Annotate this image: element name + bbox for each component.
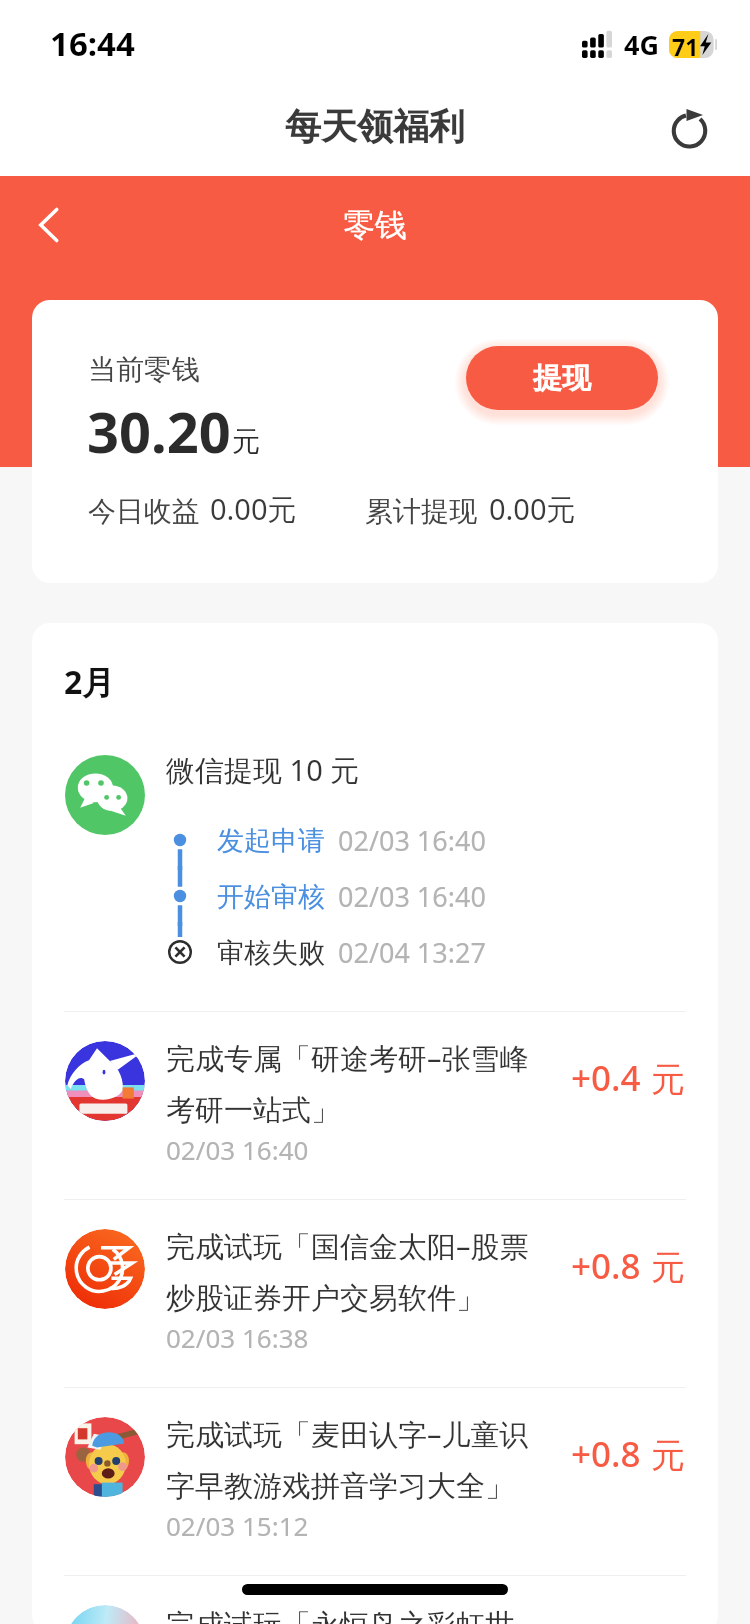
staticText: 当前零钱	[88, 352, 200, 387]
staticText: 字早教游戏拼音学习大全」	[166, 1468, 514, 1505]
staticText: 元	[651, 1434, 685, 1477]
staticText: 考研一站式」	[166, 1092, 340, 1129]
staticText: 今日收益	[88, 494, 200, 529]
button[interactable]: Refresh	[658, 99, 724, 165]
staticText: 审核失败	[217, 936, 325, 970]
staticText: 元	[651, 1246, 685, 1289]
staticText: 02/03 15:12	[166, 1508, 309, 1543]
staticText: 完成专属「研途考研–张雪峰	[166, 1038, 529, 1078]
staticText: 02/03 16:38	[166, 1320, 309, 1355]
button[interactable]: 提现	[466, 346, 658, 410]
staticText: 02/04 13:27	[338, 934, 486, 971]
staticText: 每天领福利	[285, 104, 465, 149]
staticText: 炒股证券开户交易软件」	[166, 1280, 485, 1317]
staticText: +0.4	[571, 1054, 641, 1102]
staticText: 71	[672, 31, 699, 58]
staticText: +0.8	[571, 1242, 641, 1290]
staticText: 完成试玩「国信金太阳–股票	[166, 1226, 529, 1266]
staticText: 0.00元	[489, 489, 576, 529]
staticText: 16:44	[50, 21, 135, 66]
staticText: 零钱	[343, 205, 407, 245]
staticText: 02/03 16:40	[338, 878, 486, 915]
button[interactable]: Back	[16, 191, 84, 259]
staticText: 元	[232, 424, 260, 459]
staticText: 2月	[64, 660, 115, 704]
staticText: 元	[651, 1058, 685, 1101]
staticText: 微信提现 10 元	[166, 750, 360, 790]
staticText: 发起申请	[217, 824, 325, 858]
staticText: 30.20	[87, 393, 231, 469]
staticText: 4G	[624, 26, 659, 63]
staticText: 累计提现	[365, 494, 477, 529]
staticText: 提现	[533, 360, 591, 397]
staticText: +0.8	[571, 1430, 641, 1478]
staticText: 完成试玩「麦田认字–儿童识	[166, 1414, 529, 1454]
staticText: 0.00元	[210, 489, 297, 529]
staticText: 02/03 16:40	[338, 822, 486, 859]
staticText: 开始审核	[217, 880, 325, 914]
staticText: 02/03 16:40	[166, 1132, 309, 1167]
staticText: 完成试玩「永恒鸟之彩虹世	[166, 1607, 514, 1624]
